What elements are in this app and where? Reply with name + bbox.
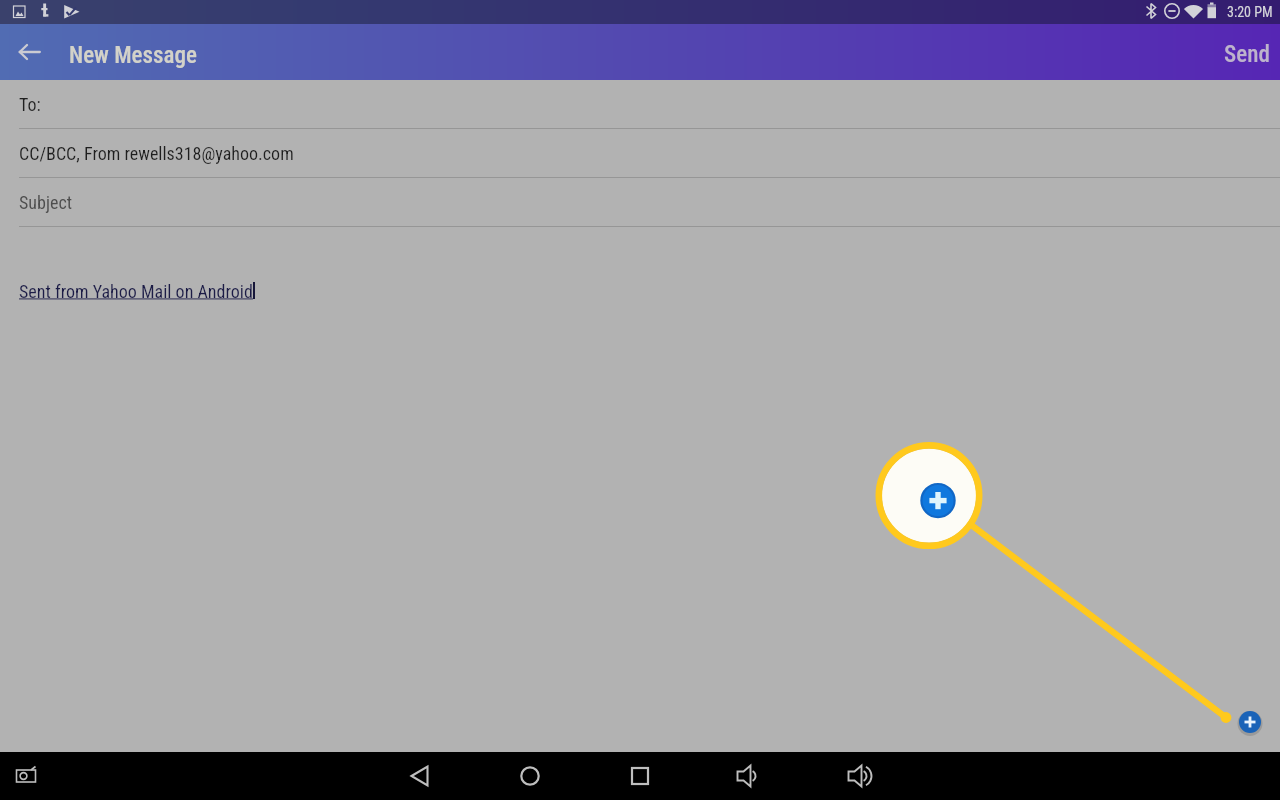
button[interactable]: Back	[396, 752, 444, 800]
button[interactable]: Back	[4, 28, 52, 76]
staticText: Subject	[19, 192, 73, 213]
button[interactable]: Home	[506, 752, 554, 800]
button[interactable]: Recents	[616, 752, 664, 800]
staticText: Send	[1224, 41, 1270, 68]
button[interactable]: Subject	[0, 178, 1280, 227]
staticText: New Message	[69, 42, 197, 69]
staticText: CC/BCC, From rewells318@yahoo.com	[19, 143, 294, 164]
button[interactable]: Screenshot	[2, 752, 50, 800]
button[interactable]: To:	[0, 80, 1280, 129]
button[interactable]: Volume up	[836, 752, 884, 800]
button[interactable]: CC/BCC, From rewells318@yahoo.com	[0, 129, 1280, 178]
button[interactable]: Volume down	[725, 752, 773, 800]
staticText: Sent from Yahoo Mail on Android	[19, 281, 253, 302]
staticText: To:	[19, 94, 41, 115]
staticText: 3:20 PM	[1227, 4, 1273, 20]
button[interactable]: Send	[1214, 27, 1280, 78]
